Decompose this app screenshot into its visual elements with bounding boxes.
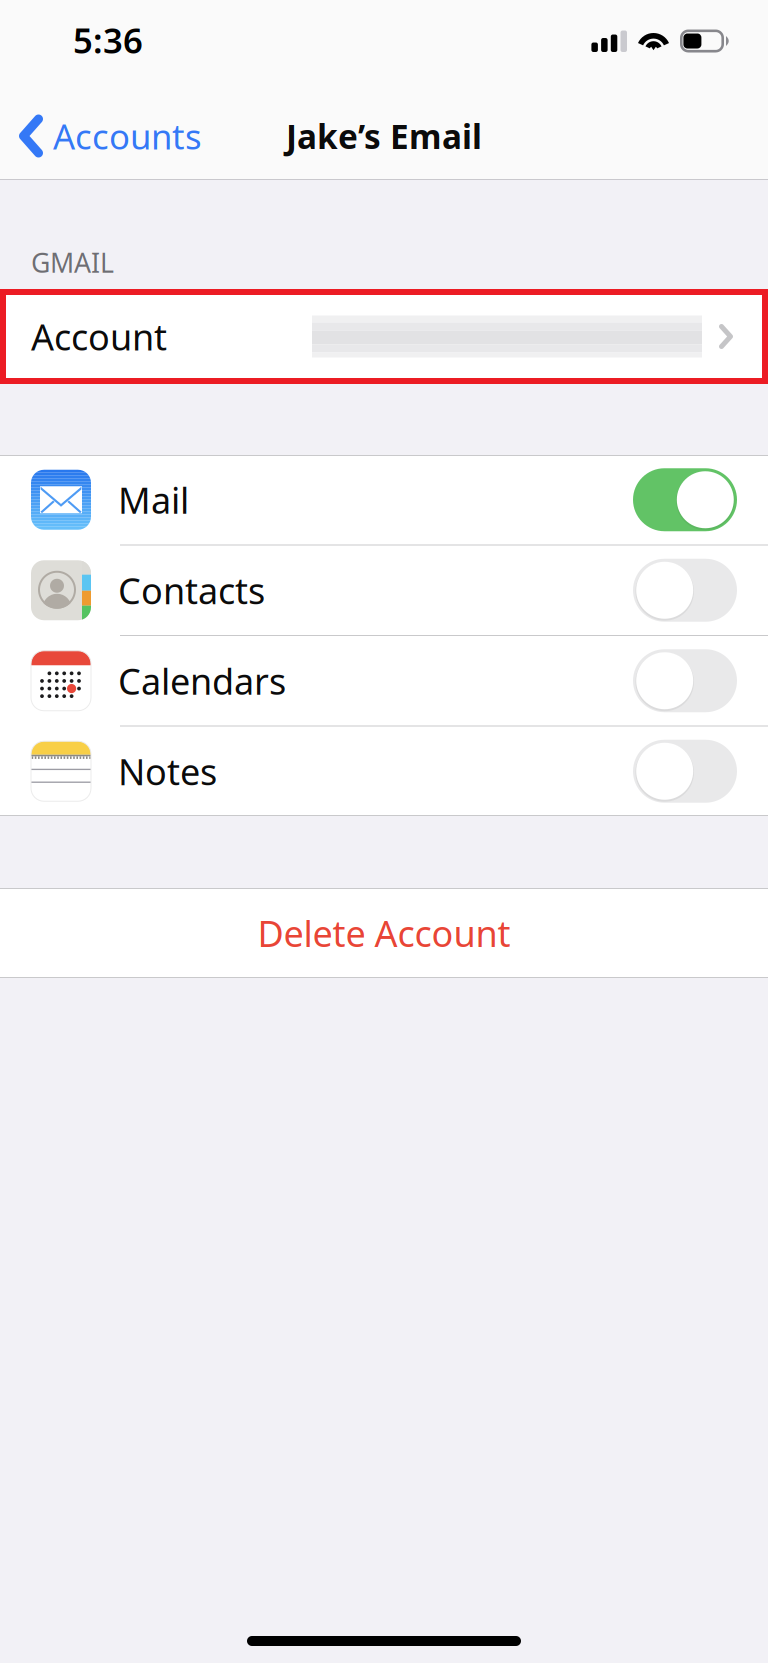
button[interactable]: Accounts bbox=[0, 104, 216, 168]
button[interactable]: Calendars bbox=[0, 636, 768, 725]
staticText: Delete Account bbox=[257, 909, 510, 957]
staticText: Accounts bbox=[53, 113, 202, 159]
staticText: Jake’s Email bbox=[286, 114, 482, 158]
button[interactable]: Account bbox=[0, 289, 768, 384]
button[interactable]: Notes bbox=[0, 726, 768, 816]
staticText: 5:36 bbox=[73, 17, 143, 63]
staticText: Account bbox=[31, 313, 167, 360]
staticText: Mail bbox=[118, 476, 189, 524]
staticText: Calendars bbox=[118, 657, 286, 705]
staticText: Contacts bbox=[118, 566, 265, 614]
button[interactable]: Contacts bbox=[0, 545, 768, 635]
staticText: GMAIL bbox=[31, 245, 114, 280]
staticText: Notes bbox=[118, 747, 217, 795]
button[interactable]: Mail bbox=[0, 455, 768, 544]
button[interactable]: Delete Account bbox=[0, 888, 768, 978]
